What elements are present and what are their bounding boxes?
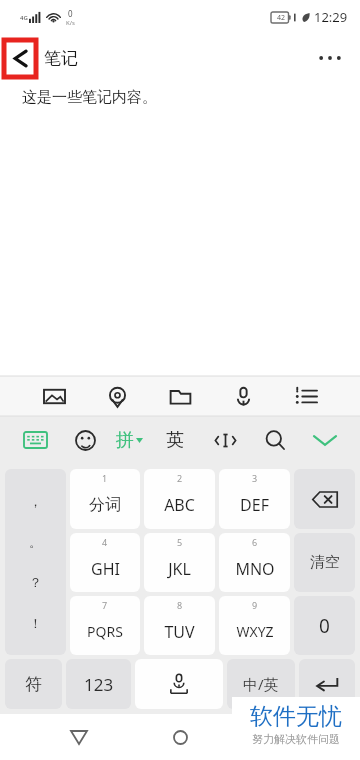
staticText: 7 [102,599,108,611]
staticText: 6 [252,536,258,548]
staticText: 4G [20,14,28,22]
button[interactable]: Search [256,421,294,459]
button[interactable]: 2 [144,469,215,529]
staticText: ？ [29,574,42,590]
staticText: 2 [177,472,183,484]
button[interactable]: Voice input [223,376,263,416]
button[interactable]: 123 [66,659,131,709]
button[interactable]: 4 [70,533,140,592]
staticText: 5 [177,536,183,548]
staticText: 9 [252,599,258,611]
button[interactable]: Emoji [66,421,104,459]
staticText: ， [29,493,42,509]
button[interactable]: 8 [144,596,215,655]
button[interactable]: Insert image [34,376,74,416]
button[interactable]: Files [160,376,200,416]
button[interactable]: Space, voice input [135,659,223,709]
staticText: 英 [166,429,184,452]
button[interactable]: Backspace [294,469,355,529]
staticText: 1 [102,472,108,484]
staticText: 中/英 [243,674,279,694]
button[interactable]: Clipboard list [286,376,326,416]
button[interactable]: Back [4,40,36,77]
button[interactable]: 9 [219,596,290,655]
staticText: DEF [240,494,269,516]
button[interactable]: 符 [5,659,62,709]
staticText: 8 [177,599,183,611]
staticText: 12:29 [314,8,348,26]
button[interactable]: Move cursor [206,421,244,459]
button[interactable]: Home [157,714,203,760]
staticText: 4 [102,536,108,548]
button[interactable]: Keyboard layout [16,421,54,459]
button[interactable]: Back [56,714,102,760]
staticText: 42 [277,13,286,23]
staticText: 0 [319,613,330,639]
button[interactable]: 清空 [294,533,355,592]
staticText: ABC [164,494,195,516]
staticText: 0 [68,8,73,19]
staticText: 笔记 [44,48,78,69]
button[interactable]: ， [5,469,66,655]
staticText: MNO [235,558,275,580]
staticText: 清空 [310,553,340,572]
staticText: 这是一些笔记内容。 [22,88,157,107]
button[interactable]: 6 [219,533,290,592]
staticText: 123 [84,673,114,696]
button[interactable]: 中/英 [227,659,295,709]
button[interactable]: Hide keyboard [306,421,344,459]
staticText: ！ [29,615,42,631]
staticText: 努力解决软件问题 [252,732,340,746]
staticText: 分词 [89,495,121,515]
button[interactable]: 0 [294,596,355,655]
staticText: 软件无忧 [250,702,342,731]
staticText: 。 [29,534,42,550]
staticText: 3 [252,472,258,484]
button[interactable]: 5 [144,533,215,592]
button[interactable]: 拼 [116,421,143,459]
button[interactable]: Location [97,376,137,416]
staticText: TUV [164,621,195,643]
button[interactable]: 1 [70,469,140,529]
button[interactable]: Recents [259,714,305,760]
button[interactable]: 7 [70,596,140,655]
staticText: K/s [66,19,75,27]
button[interactable]: 3 [219,469,290,529]
button[interactable]: 英 [156,421,194,459]
button[interactable]: More options [308,36,352,80]
staticText: JKL [168,558,191,580]
button[interactable]: Enter [299,659,355,709]
staticText: 符 [25,674,42,695]
staticText: WXYZ [236,622,274,641]
staticText: PQRS [87,622,123,641]
staticText: GHI [91,558,120,580]
staticText: 拼 [116,429,134,452]
